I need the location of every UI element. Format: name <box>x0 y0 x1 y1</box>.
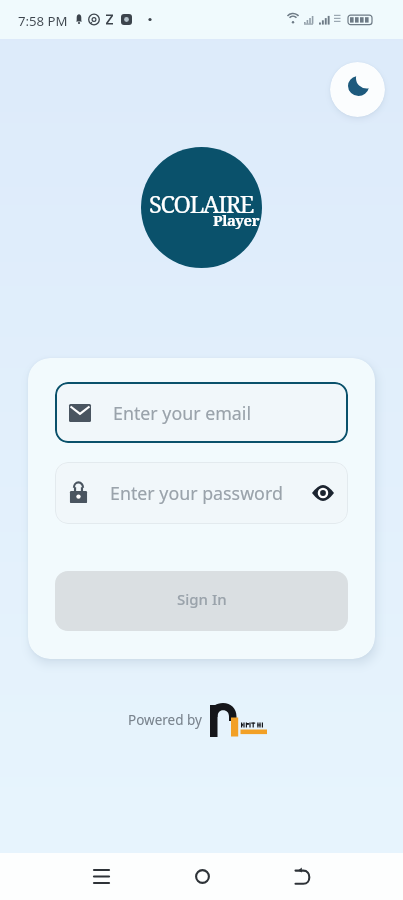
button[interactable]: Back <box>279 853 327 900</box>
button[interactable]: Toggle dark mode <box>330 62 385 117</box>
button[interactable]: Home <box>178 853 226 900</box>
button[interactable]: Recent apps <box>77 853 125 900</box>
staticText: Powered by <box>128 711 202 729</box>
button[interactable]: Enter your password <box>55 462 348 524</box>
staticText: Sign In <box>177 589 227 609</box>
staticText: Player <box>213 210 260 230</box>
staticText: Enter your password <box>110 481 283 505</box>
button[interactable]: Sign In <box>55 571 348 631</box>
staticText: 7:58 PM <box>18 12 68 30</box>
button[interactable]: Show password <box>306 476 340 510</box>
staticText: SCOLAIRE <box>149 188 254 220</box>
staticText: Enter your email <box>113 401 251 425</box>
button[interactable]: Enter your email <box>55 382 348 443</box>
